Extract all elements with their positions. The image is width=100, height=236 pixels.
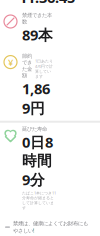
staticText: 節約できた金額 [22,53,32,79]
staticText: 89本 [22,25,53,45]
staticText: たばこ1本につき11分寿命が縮まるとして計算しています [22,190,56,210]
staticText: 禁煙できた本数 [22,12,52,25]
button[interactable]: ¥ [0,50,100,121]
staticText: 延びた寿命 [22,126,47,132]
staticText: 1,869円 [22,79,50,118]
staticText: 1日あたり470円で計算しています [35,58,53,79]
button[interactable]: 延びた寿命 [0,123,100,213]
staticText: 4日11:36:45 [19,0,75,7]
staticText: 禁煙は、健康によくてお財布にもやさしい! [13,220,88,234]
staticText: ¥ [8,56,13,68]
staticText: 0日8時間9分 [22,132,53,189]
button[interactable]: 禁煙できた本数 [0,9,100,48]
